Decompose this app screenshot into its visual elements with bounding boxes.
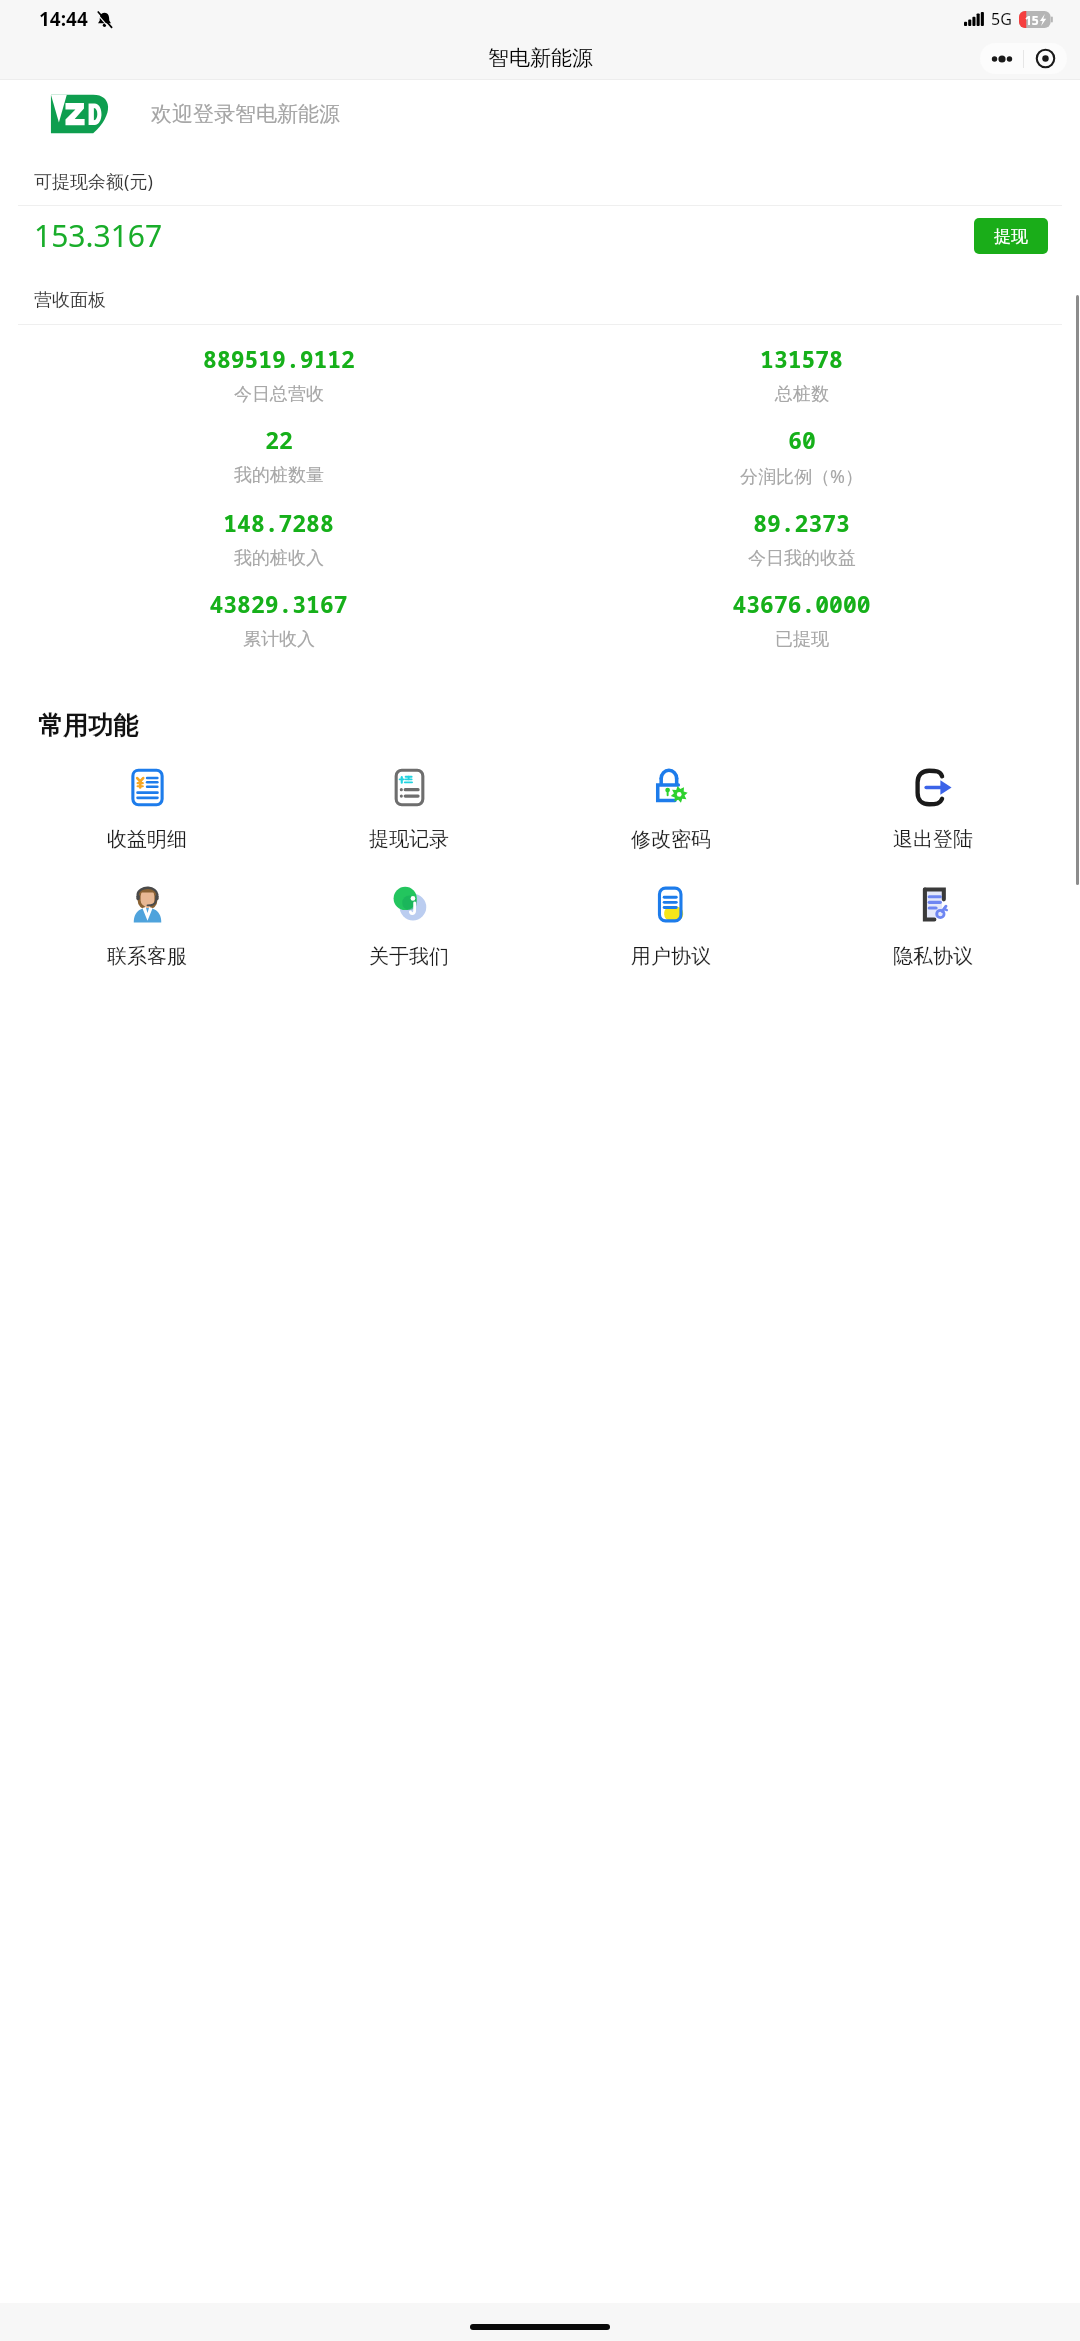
staticText: 营收面板 xyxy=(34,289,106,312)
staticText: 43829.3167 xyxy=(209,588,348,619)
staticText: 可提现余额(元) xyxy=(34,169,153,194)
button[interactable]: 43676.0000 xyxy=(540,588,1063,651)
staticText: 889519.9112 xyxy=(203,343,355,374)
staticText: 提现记录 xyxy=(369,827,449,852)
button[interactable]: 关于我们 xyxy=(278,879,540,973)
staticText: 累计收入 xyxy=(243,628,315,651)
staticText: 5G xyxy=(991,8,1012,30)
staticText: 15 xyxy=(1025,12,1039,28)
staticText: 总桩数 xyxy=(775,383,829,406)
staticText: 智电新能源 xyxy=(488,45,593,71)
button[interactable]: 联系客服 xyxy=(16,879,278,973)
staticText: 分润比例（%） xyxy=(740,464,863,489)
staticText: 联系客服 xyxy=(107,944,187,969)
button[interactable]: More xyxy=(980,43,1023,74)
staticText: 提现 xyxy=(994,226,1028,247)
button[interactable]: 131578 xyxy=(540,343,1063,406)
staticText: 收益明细 xyxy=(107,827,187,852)
button[interactable]: 60 xyxy=(540,424,1063,489)
staticText: 已提现 xyxy=(775,628,829,651)
button[interactable]: 提现记录 xyxy=(278,762,540,856)
button[interactable]: 889519.9112 xyxy=(17,343,540,406)
staticText: 我的桩收入 xyxy=(234,547,324,570)
staticText: 14:44 xyxy=(39,6,88,32)
button[interactable]: 退出登陆 xyxy=(802,762,1064,856)
staticText: 隐私协议 xyxy=(893,944,973,969)
button[interactable]: 89.2373 xyxy=(540,507,1063,570)
button[interactable]: 提现 xyxy=(974,218,1048,254)
button[interactable]: 修改密码 xyxy=(540,762,802,856)
staticText: 89.2373 xyxy=(753,507,850,538)
staticText: 60 xyxy=(788,424,816,455)
button[interactable]: 隐私协议 xyxy=(802,879,1064,973)
staticText: 今日总营收 xyxy=(234,383,324,406)
staticText: 常用功能 xyxy=(38,710,138,741)
staticText: 我的桩数量 xyxy=(234,464,324,487)
button[interactable]: 收益明细 xyxy=(16,762,278,856)
staticText: 131578 xyxy=(760,343,843,374)
staticText: 148.7288 xyxy=(223,507,334,538)
staticText: 153.3167 xyxy=(34,215,163,256)
staticText: 43676.0000 xyxy=(732,588,871,619)
button[interactable]: 43829.3167 xyxy=(17,588,540,651)
staticText: 关于我们 xyxy=(369,944,449,969)
staticText: 退出登陆 xyxy=(893,827,973,852)
button[interactable]: 22 xyxy=(17,424,540,487)
staticText: 今日我的收益 xyxy=(748,547,856,570)
staticText: 欢迎登录智电新能源 xyxy=(151,101,340,127)
button[interactable]: 148.7288 xyxy=(17,507,540,570)
staticText: 用户协议 xyxy=(631,944,711,969)
button[interactable]: Close xyxy=(1024,43,1067,74)
staticText: 修改密码 xyxy=(631,827,711,852)
staticText: 22 xyxy=(265,424,293,455)
button[interactable]: 用户协议 xyxy=(540,879,802,973)
